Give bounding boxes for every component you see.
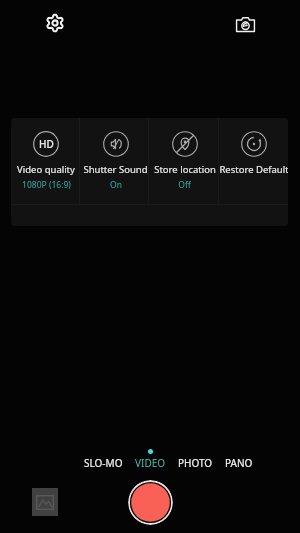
- button[interactable]: VIDEO: [129, 447, 172, 470]
- staticText: PHOTO: [178, 456, 213, 470]
- staticText: SLO-MO: [84, 456, 123, 470]
- button[interactable]: Shutter Sound: [81, 118, 150, 191]
- button[interactable]: SLO-MO: [78, 447, 129, 470]
- staticText: Off: [178, 179, 191, 191]
- staticText: Restore Default: [219, 163, 288, 176]
- button[interactable]: Switch camera: [231, 9, 259, 37]
- staticText: Store location: [154, 163, 216, 176]
- button[interactable]: Gallery: [32, 488, 58, 516]
- button[interactable]: Settings: [41, 9, 69, 37]
- staticText: On: [110, 179, 122, 191]
- button[interactable]: Store location: [150, 118, 219, 191]
- staticText: Shutter Sound: [83, 163, 148, 176]
- staticText: 1080P (16:9): [22, 179, 71, 191]
- button[interactable]: HD: [11, 118, 81, 191]
- button[interactable]: Restore Default: [219, 118, 288, 176]
- button[interactable]: Record: [128, 480, 173, 525]
- staticText: Video quality: [17, 163, 75, 176]
- button[interactable]: PHOTO: [172, 447, 219, 470]
- staticText: PANO: [225, 456, 253, 470]
- staticText: VIDEO: [135, 456, 166, 470]
- button[interactable]: PANO: [219, 447, 259, 470]
- staticText: HD: [39, 137, 54, 151]
